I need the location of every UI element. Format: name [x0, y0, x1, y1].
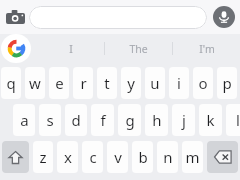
button[interactable]: I [38, 34, 104, 63]
staticText: a [20, 110, 29, 130]
button[interactable]: b [132, 141, 153, 173]
button[interactable]: n [157, 141, 178, 173]
button[interactable]: p [217, 67, 237, 99]
button[interactable]: c [82, 141, 103, 173]
button[interactable]: Shift [2, 141, 29, 173]
button[interactable]: z [33, 141, 53, 173]
button[interactable]: x [57, 141, 78, 173]
staticText: v [114, 147, 122, 167]
button[interactable]: w [25, 67, 45, 99]
staticText: t [104, 73, 110, 93]
staticText: d [71, 110, 81, 130]
button[interactable]: q [1, 67, 21, 99]
staticText: c [89, 147, 97, 167]
staticText: y [127, 73, 135, 93]
button[interactable]: k [199, 104, 222, 136]
button[interactable]: e [49, 67, 69, 99]
staticText: e [55, 73, 64, 93]
button[interactable]: h [145, 104, 168, 136]
button[interactable]: The [105, 34, 172, 63]
staticText: p [222, 73, 232, 93]
button[interactable]: d [65, 104, 87, 136]
button[interactable]: y [121, 67, 141, 99]
button[interactable]: I'm [173, 34, 240, 63]
staticText: z [39, 147, 47, 167]
button[interactable]: l [226, 104, 240, 136]
staticText: i [177, 73, 181, 93]
staticText: x [64, 147, 72, 167]
staticText: I'm [199, 42, 215, 56]
button[interactable]: Voice input [213, 6, 235, 28]
staticText: k [206, 110, 215, 130]
button[interactable]: o [193, 67, 213, 99]
button[interactable]: a [13, 104, 35, 136]
staticText: g [125, 110, 135, 130]
button[interactable]: Camera [3, 5, 27, 29]
button[interactable]: j [172, 104, 195, 136]
staticText: r [80, 73, 87, 93]
staticText: The [129, 42, 148, 56]
button[interactable]: t [97, 67, 117, 99]
staticText: h [152, 110, 162, 130]
button[interactable]: Backspace [207, 141, 238, 173]
button[interactable]: s [39, 104, 61, 136]
staticText: o [198, 73, 208, 93]
button[interactable]: g [118, 104, 141, 136]
button[interactable]: m [182, 141, 203, 173]
button[interactable]: v [107, 141, 128, 173]
staticText: u [150, 73, 160, 93]
staticText: l [236, 110, 240, 130]
staticText: f [100, 110, 106, 130]
staticText: I [69, 42, 73, 56]
button[interactable]: u [145, 67, 165, 99]
button[interactable]: Text input field [29, 6, 207, 29]
staticText: w [29, 73, 41, 93]
button[interactable]: Google search [1, 34, 31, 63]
button[interactable]: i [169, 67, 189, 99]
staticText: n [163, 147, 173, 167]
staticText: j [182, 110, 186, 130]
staticText: s [46, 110, 54, 130]
staticText: m [185, 147, 200, 167]
staticText: q [6, 73, 16, 93]
staticText: b [138, 147, 148, 167]
button[interactable]: f [91, 104, 114, 136]
button[interactable]: r [73, 67, 93, 99]
